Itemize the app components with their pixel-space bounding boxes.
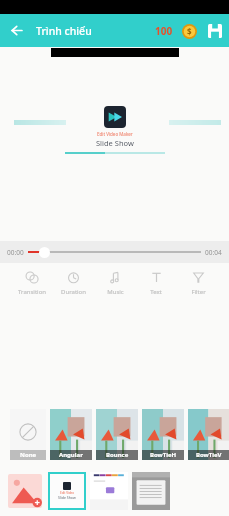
button[interactable]: BowTieV — [188, 409, 229, 460]
staticText: BowTieV — [196, 451, 222, 459]
staticText: Trình chiếu — [36, 24, 92, 38]
button[interactable]: Coins — [177, 19, 201, 43]
staticText: Text — [150, 288, 162, 296]
staticText: 100 — [155, 24, 173, 38]
button[interactable]: Music — [95, 268, 135, 298]
staticText: 00:04 — [205, 248, 222, 257]
button[interactable] — [132, 472, 170, 510]
button[interactable]: BowTieH — [142, 409, 184, 460]
staticText: Edit Video Maker — [97, 131, 133, 137]
staticText: Edit Video — [60, 491, 75, 495]
staticText: Transition — [18, 288, 46, 296]
staticText: BowTieH — [150, 451, 177, 459]
button[interactable]: None — [10, 409, 46, 460]
staticText: Angular — [59, 451, 83, 459]
button[interactable]: Save — [201, 17, 229, 45]
staticText: $ — [187, 26, 192, 37]
staticText: 00:00 — [7, 248, 24, 257]
button[interactable]: Add photo — [8, 474, 42, 508]
button[interactable]: Angular — [50, 409, 92, 460]
button[interactable]: Text — [136, 268, 176, 298]
button[interactable]: Bounce — [96, 409, 138, 460]
button[interactable] — [90, 472, 128, 510]
staticText: Slide Show — [96, 138, 134, 148]
button[interactable]: Transition — [12, 268, 52, 298]
staticText: Duration — [61, 288, 86, 296]
button[interactable]: Edit Video — [48, 472, 86, 510]
button[interactable]: Back — [0, 14, 33, 47]
staticText: Filter — [191, 288, 206, 296]
staticText: None — [20, 451, 37, 459]
staticText: Slide Show — [58, 495, 76, 500]
button[interactable]: Duration — [53, 268, 93, 298]
staticText: Music — [107, 288, 124, 296]
button[interactable] — [28, 241, 201, 263]
button[interactable]: Filter — [178, 268, 218, 298]
staticText: Bounce — [106, 451, 129, 459]
